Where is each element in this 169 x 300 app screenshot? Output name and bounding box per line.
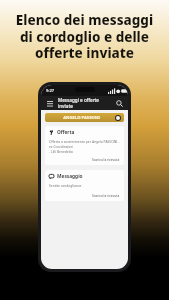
staticText: Elenco dei messaggi di cordoglio e delle… <box>10 11 159 62</box>
button[interactable]: Messaggio <box>45 170 124 201</box>
button[interactable]: Scarica la ricevuta <box>92 158 120 162</box>
button[interactable]: Cerca <box>114 98 124 108</box>
staticText: ANGELO PASSONI <box>48 115 115 121</box>
staticText: Messaggio <box>57 173 83 180</box>
staticText: Sentite condoglianze <box>49 183 82 187</box>
staticText: Offerta <box>57 129 75 136</box>
staticText: Offerta a sostenimento per Angelo PASSON… <box>49 139 120 154</box>
button[interactable]: ANGELO PASSONI <box>45 113 124 122</box>
button[interactable]: Menu <box>45 99 54 108</box>
staticText: Messaggi e offerte inviate <box>58 97 114 109</box>
button[interactable]: Offerta <box>45 126 124 165</box>
staticText: 9:27 <box>46 88 54 93</box>
button[interactable]: Scarica la ricevuta <box>92 194 120 198</box>
